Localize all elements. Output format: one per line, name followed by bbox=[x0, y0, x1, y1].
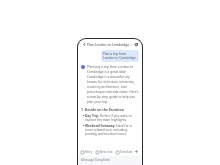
button[interactable]: More bbox=[134, 149, 139, 154]
staticText: New chat bbox=[100, 150, 113, 154]
button[interactable]: Message DeepSeek bbox=[81, 158, 139, 162]
staticText: Translate bbox=[120, 150, 133, 154]
button[interactable]: Translate bbox=[116, 150, 133, 154]
staticText: Retry bbox=[85, 150, 93, 154]
staticText: Planning a trip from London to Cambridge… bbox=[87, 65, 139, 103]
staticText: Day Trip: Perfect if you want to explore… bbox=[85, 114, 139, 122]
staticText: 1. Decide on the Duration bbox=[81, 107, 124, 112]
staticText: Plan London to Cambridge... bbox=[87, 42, 132, 46]
button[interactable]: New chat bbox=[133, 41, 139, 47]
button[interactable]: Retry bbox=[81, 150, 93, 154]
staticText: Plan a trip from London to Cambridge bbox=[103, 52, 137, 60]
button[interactable]: Back bbox=[81, 41, 87, 47]
staticText: Weekend Getaway: Ideal for a more relaxe… bbox=[85, 124, 139, 136]
staticText: Message DeepSeek bbox=[81, 158, 111, 162]
other: Assistant bbox=[81, 65, 85, 69]
button[interactable]: Plan a trip from London to Cambridge bbox=[101, 50, 139, 62]
button[interactable]: New chat bbox=[96, 150, 113, 154]
